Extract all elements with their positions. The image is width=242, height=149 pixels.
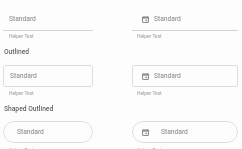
- staticText: Helper Text: [137, 90, 162, 96]
- staticText: Outlined: [4, 48, 30, 56]
- button[interactable]: Pick a date: [132, 11, 238, 31]
- staticText: Helper Text: [137, 33, 162, 39]
- other: Pick a date: [142, 129, 149, 136]
- button[interactable]: Standard: [3, 11, 93, 31]
- button[interactable]: Standard: [3, 121, 93, 143]
- other: Pick a date: [142, 16, 149, 23]
- staticText: Standard: [17, 128, 44, 136]
- staticText: Standard: [10, 72, 37, 80]
- staticText: Helper Text: [9, 147, 34, 149]
- staticText: Helper Text: [9, 33, 34, 39]
- staticText: Helper Text: [137, 147, 162, 149]
- staticText: Helper Text: [9, 90, 34, 96]
- other: Pick a date: [142, 73, 149, 80]
- staticText: Standard: [154, 15, 181, 23]
- button[interactable]: Pick a date: [132, 65, 238, 87]
- staticText: Standard: [154, 72, 181, 80]
- staticText: Shaped Outlined: [4, 105, 54, 113]
- button[interactable]: Pick a date: [132, 121, 238, 143]
- button[interactable]: Standard: [3, 65, 93, 87]
- staticText: Standard: [9, 15, 36, 23]
- staticText: Standard: [161, 128, 188, 136]
